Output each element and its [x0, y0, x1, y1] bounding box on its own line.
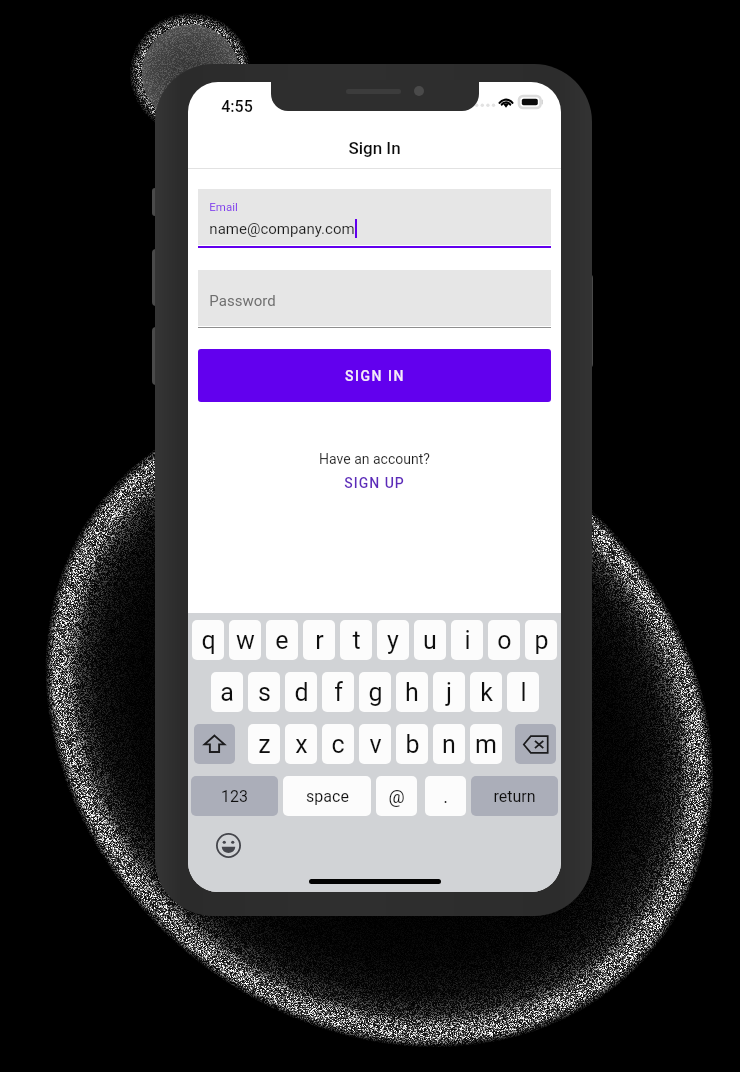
- staticText: a: [220, 678, 234, 707]
- staticText: j: [446, 678, 452, 707]
- staticText: w: [236, 626, 255, 655]
- button[interactable]: d: [285, 672, 317, 712]
- button[interactable]: l: [507, 672, 539, 712]
- button[interactable]: @: [376, 776, 417, 816]
- button[interactable]: s: [248, 672, 280, 712]
- button[interactable]: e: [266, 620, 298, 660]
- button[interactable]: p: [525, 620, 557, 660]
- button[interactable]: Ring/Silent switch: [152, 188, 162, 216]
- staticText: Sign In: [348, 138, 401, 158]
- button[interactable]: v: [359, 724, 391, 764]
- staticText: .: [443, 786, 448, 807]
- staticText: m: [475, 730, 497, 759]
- button[interactable]: Emoji keyboard: [216, 833, 241, 858]
- staticText: 123: [221, 787, 248, 806]
- button[interactable]: y: [377, 620, 409, 660]
- button[interactable]: f: [322, 672, 354, 712]
- staticText: b: [405, 730, 420, 759]
- staticText: Password: [209, 292, 276, 310]
- button[interactable]: Backspace: [515, 724, 556, 764]
- button[interactable]: z: [248, 724, 280, 764]
- button[interactable]: w: [229, 620, 261, 660]
- button[interactable]: j: [433, 672, 465, 712]
- button[interactable]: o: [488, 620, 520, 660]
- staticText: Have an account?: [188, 451, 561, 467]
- button[interactable]: .: [425, 776, 466, 816]
- staticText: g: [368, 678, 383, 707]
- staticText: f: [334, 678, 343, 707]
- staticText: @: [388, 786, 405, 807]
- button[interactable]: b: [396, 724, 428, 764]
- button[interactable]: 123: [191, 776, 278, 816]
- button[interactable]: x: [285, 724, 317, 764]
- button[interactable]: g: [359, 672, 391, 712]
- staticText: i: [464, 626, 471, 655]
- button[interactable]: Shift: [194, 724, 235, 764]
- staticText: z: [258, 730, 271, 759]
- staticText: s: [258, 678, 271, 707]
- button[interactable]: space: [283, 776, 371, 816]
- staticText: Email: [209, 200, 238, 213]
- staticText: u: [423, 626, 437, 655]
- staticText: d: [294, 678, 309, 707]
- button[interactable]: u: [414, 620, 446, 660]
- staticText: n: [442, 730, 456, 759]
- staticText: v: [369, 730, 382, 759]
- staticText: y: [387, 626, 399, 655]
- button[interactable]: i: [451, 620, 483, 660]
- staticText: x: [295, 730, 308, 759]
- button[interactable]: r: [303, 620, 335, 660]
- button[interactable]: SIGN UP: [188, 475, 561, 491]
- button[interactable]: Volume down: [152, 327, 162, 385]
- staticText: SIGN IN: [345, 368, 405, 384]
- staticText: space: [306, 787, 349, 806]
- button[interactable]: SIGN IN: [198, 349, 551, 402]
- button[interactable]: t: [340, 620, 372, 660]
- button[interactable]: n: [433, 724, 465, 764]
- button[interactable]: q: [192, 620, 224, 660]
- button[interactable]: c: [322, 724, 354, 764]
- staticText: c: [331, 730, 345, 759]
- staticText: 4:55: [221, 97, 253, 116]
- button[interactable]: return: [471, 776, 558, 816]
- button[interactable]: Email: [198, 189, 551, 248]
- button[interactable]: h: [396, 672, 428, 712]
- staticText: name@company.com: [209, 220, 355, 238]
- button[interactable]: Power: [584, 274, 593, 368]
- button[interactable]: Password: [198, 270, 551, 328]
- staticText: SIGN UP: [344, 475, 405, 491]
- staticText: p: [534, 626, 549, 655]
- button[interactable]: m: [470, 724, 502, 764]
- staticText: return: [493, 787, 536, 806]
- button[interactable]: a: [211, 672, 243, 712]
- staticText: e: [275, 626, 289, 655]
- staticText: h: [405, 678, 419, 707]
- staticText: o: [497, 626, 512, 655]
- staticText: r: [315, 626, 324, 655]
- staticText: q: [201, 626, 216, 655]
- staticText: t: [352, 626, 361, 655]
- button[interactable]: k: [470, 672, 502, 712]
- button[interactable]: Volume up: [152, 249, 162, 306]
- staticText: l: [520, 678, 527, 707]
- staticText: k: [480, 678, 493, 707]
